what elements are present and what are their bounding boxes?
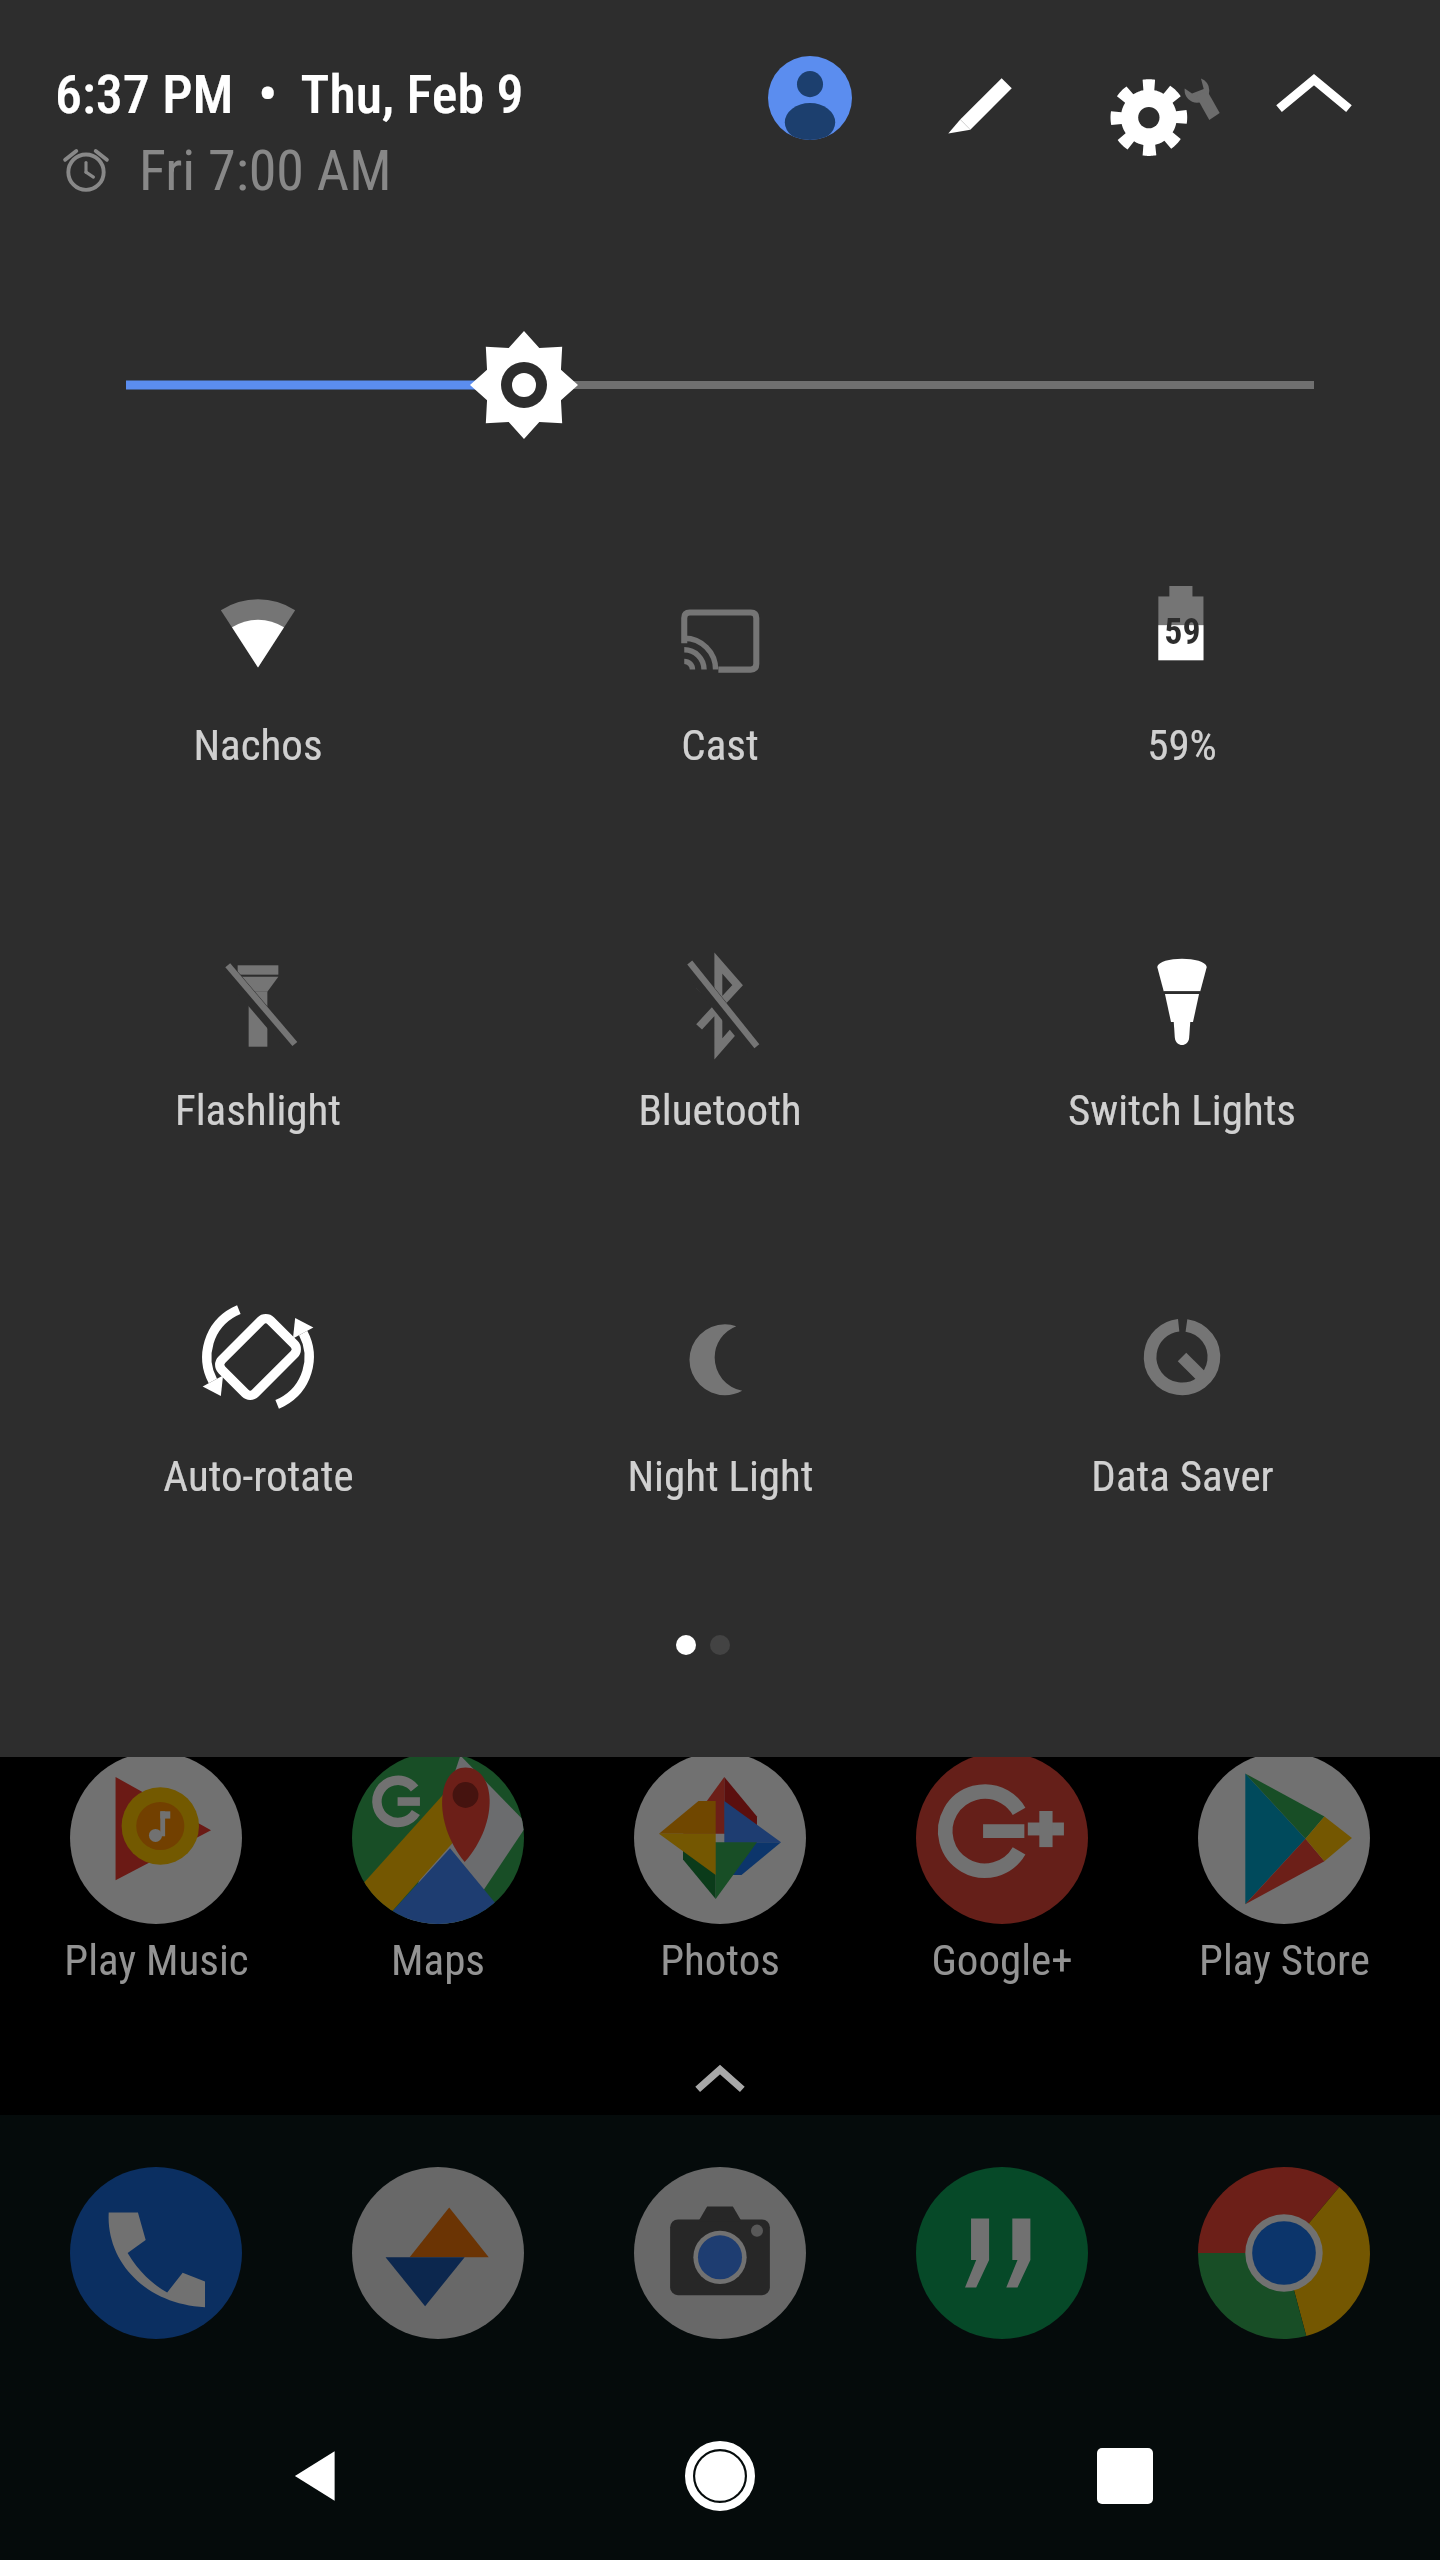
button[interactable]: Chrome (1143, 2143, 1425, 2363)
staticText: Maps (391, 1935, 485, 1985)
button[interactable]: Hangouts (861, 2143, 1143, 2363)
button[interactable]: Brightness (0, 330, 1440, 440)
button[interactable]: Settings (1104, 50, 1234, 180)
button[interactable]: User account (768, 56, 852, 140)
button[interactable]: Cast (489, 586, 951, 846)
button[interactable]: Open app drawer (689, 2051, 751, 2113)
staticText: 59 (1164, 611, 1201, 653)
button[interactable]: Photos (579, 1740, 861, 1990)
staticText: Switch Lights (1068, 1085, 1296, 1135)
button[interactable]: Play Music (15, 1740, 297, 1990)
button[interactable]: Night Light (489, 1302, 951, 1562)
staticText: Fri 7:00 AM (139, 138, 392, 204)
button[interactable]: Substratum (297, 2143, 579, 2363)
button[interactable]: 59 (951, 586, 1413, 846)
button[interactable]: Collapse panel (1268, 52, 1360, 144)
staticText: Play Store (1199, 1935, 1370, 1985)
button[interactable]: Bluetooth (489, 951, 951, 1211)
button[interactable]: Flashlight (27, 951, 489, 1211)
button[interactable]: Camera (579, 2143, 861, 2363)
button[interactable]: Auto-rotate (27, 1302, 489, 1562)
staticText: Night Light (627, 1451, 814, 1501)
button[interactable]: Google+ (861, 1740, 1143, 1990)
staticText: Play Music (64, 1935, 249, 1985)
staticText: Google+ (931, 1935, 1073, 1985)
staticText: Bluetooth (638, 1085, 802, 1135)
staticText: Photos (660, 1935, 780, 1985)
button[interactable]: Data Saver (951, 1302, 1413, 1562)
staticText: 59% (1147, 720, 1217, 770)
button[interactable]: Phone (15, 2143, 297, 2363)
button[interactable]: Play Store (1143, 1740, 1425, 1990)
button[interactable]: Switch Lights (951, 951, 1413, 1211)
button[interactable]: Home (685, 2441, 755, 2511)
button[interactable]: Maps (297, 1740, 579, 1990)
staticText: Data Saver (1091, 1451, 1274, 1501)
staticText: 6:37 PM • Thu, Feb 9 (55, 63, 524, 126)
staticText: Nachos (193, 720, 323, 770)
button[interactable]: Edit tiles (934, 52, 1026, 144)
staticText: Cast (681, 720, 759, 770)
staticText: Flashlight (175, 1085, 341, 1135)
button[interactable]: Nachos (27, 586, 489, 846)
button[interactable]: Recent apps (1090, 2441, 1160, 2511)
button[interactable]: Back (281, 2441, 351, 2511)
staticText: Auto-rotate (163, 1451, 354, 1501)
